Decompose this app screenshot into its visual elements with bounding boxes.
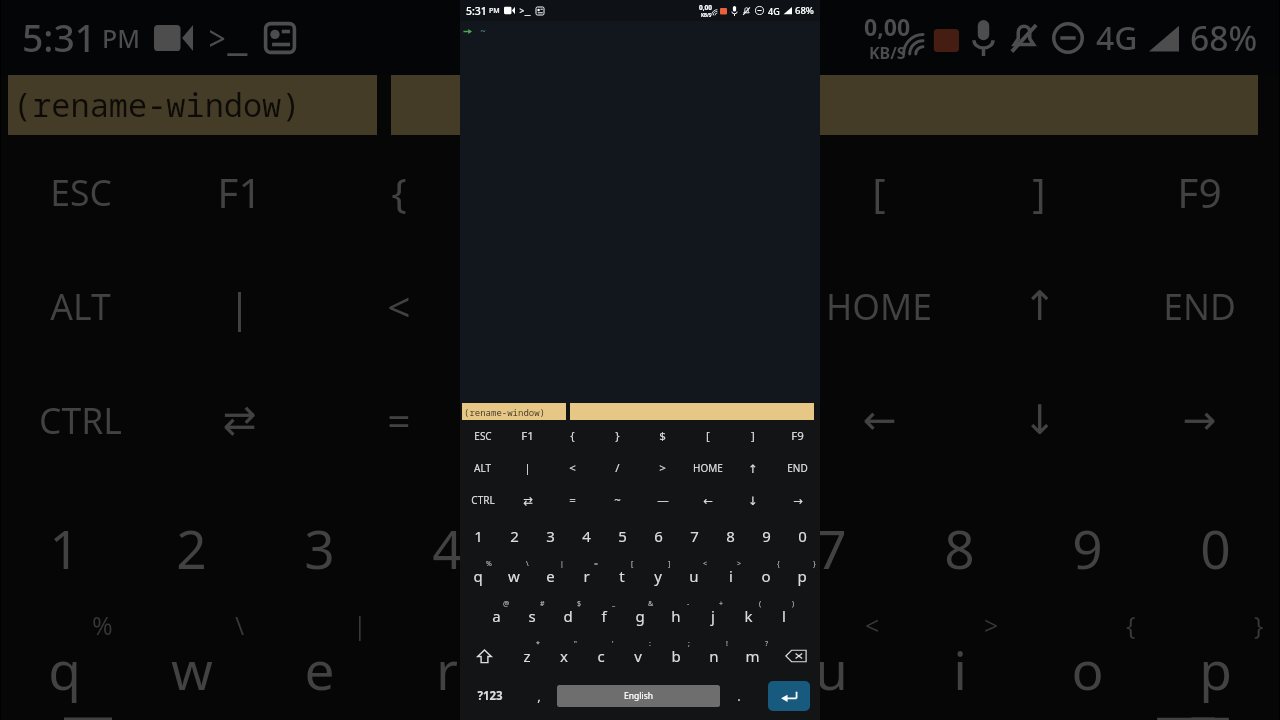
button[interactable]: 3 (255, 477, 383, 619)
button[interactable]: r (383, 619, 511, 720)
button[interactable]: F1 (505, 420, 550, 452)
button[interactable]: 9 (1023, 477, 1151, 619)
button[interactable]: Shift (460, 636, 508, 676)
button[interactable]: ALT (460, 452, 505, 484)
button[interactable]: F1 (160, 135, 319, 249)
button[interactable]: ⇄ (505, 484, 550, 516)
button[interactable]: j (694, 596, 730, 636)
button[interactable]: [ (685, 420, 730, 452)
button[interactable]: a (478, 596, 514, 636)
button[interactable]: 0 (784, 516, 820, 556)
button[interactable]: h (658, 596, 694, 636)
button[interactable]: 4 (383, 477, 511, 619)
button[interactable]: 6 (639, 477, 767, 619)
button[interactable]: ↓ (730, 484, 775, 516)
button[interactable]: q (1, 619, 128, 720)
button[interactable]: ESC (1, 135, 160, 249)
button[interactable]: p (784, 556, 820, 596)
button[interactable]: CTRL (1, 363, 160, 477)
button[interactable]: English (557, 685, 720, 707)
button[interactable]: $ (640, 420, 685, 452)
button[interactable]: | (505, 452, 550, 484)
button[interactable]: { (550, 420, 595, 452)
button[interactable]: x (545, 636, 582, 676)
button[interactable]: END (1119, 249, 1279, 363)
button[interactable]: ALT (1, 249, 160, 363)
button[interactable]: 2 (496, 516, 532, 556)
button[interactable]: | (160, 249, 319, 363)
button[interactable]: 1 (460, 516, 496, 556)
button[interactable]: / (595, 452, 640, 484)
button[interactable]: 8 (712, 516, 748, 556)
button[interactable]: END (775, 452, 820, 484)
button[interactable]: < (319, 249, 479, 363)
button[interactable]: i (895, 619, 1023, 720)
button[interactable]: 7 (767, 477, 895, 619)
button[interactable]: t (604, 556, 640, 596)
button[interactable]: — (639, 363, 799, 477)
button[interactable]: 3 (532, 516, 568, 556)
button[interactable]: q (460, 556, 496, 596)
button[interactable]: ESC (460, 420, 505, 452)
button[interactable]: 2 (128, 477, 255, 619)
button[interactable]: . (720, 676, 757, 716)
button[interactable]: ↑ (730, 452, 775, 484)
button[interactable]: f (586, 596, 622, 636)
button[interactable]: u (767, 619, 895, 720)
button[interactable]: w (128, 619, 255, 720)
button[interactable]: c (582, 636, 619, 676)
button[interactable]: F9 (1119, 135, 1279, 249)
button[interactable]: > (640, 452, 685, 484)
button[interactable]: { (319, 135, 479, 249)
button[interactable]: ↑ (959, 249, 1119, 363)
button[interactable]: = (550, 484, 595, 516)
button[interactable]: HOME (799, 249, 959, 363)
button[interactable]: ⇄ (160, 363, 319, 477)
button[interactable]: < (550, 452, 595, 484)
button[interactable]: } (595, 420, 640, 452)
button[interactable]: s (514, 596, 550, 636)
button[interactable]: l (766, 596, 802, 636)
button[interactable]: n (695, 636, 733, 676)
button[interactable]: t (511, 619, 639, 720)
button[interactable]: , (520, 676, 557, 716)
button[interactable]: 9 (748, 516, 784, 556)
button[interactable]: 1 (1, 477, 128, 619)
button[interactable]: o (1023, 619, 1151, 720)
button[interactable]: ~ (595, 484, 640, 516)
button[interactable]: F9 (775, 420, 820, 452)
button[interactable]: b (657, 636, 695, 676)
button[interactable]: = (319, 363, 479, 477)
button[interactable]: 5 (511, 477, 639, 619)
button[interactable]: — (640, 484, 685, 516)
button[interactable]: 7 (676, 516, 712, 556)
button[interactable]: 6 (640, 516, 676, 556)
button[interactable]: ← (799, 363, 959, 477)
button[interactable]: v (619, 636, 657, 676)
button[interactable]: 8 (895, 477, 1023, 619)
button[interactable]: ~ (479, 363, 639, 477)
button[interactable]: → (775, 484, 820, 516)
button[interactable]: m (733, 636, 771, 676)
button[interactable]: 4 (568, 516, 604, 556)
button[interactable]: Enter (768, 681, 810, 711)
button[interactable]: y (639, 619, 767, 720)
button[interactable]: d (550, 596, 586, 636)
button[interactable]: ← (685, 484, 730, 516)
button[interactable]: w (496, 556, 532, 596)
button[interactable]: p (1151, 619, 1279, 720)
button[interactable]: y (640, 556, 676, 596)
button[interactable]: k (730, 596, 766, 636)
button[interactable]: Backspace (771, 636, 820, 676)
button[interactable]: CTRL (460, 484, 505, 516)
button[interactable]: 5 (604, 516, 640, 556)
button[interactable]: e (255, 619, 383, 720)
button[interactable]: ?123 (460, 676, 520, 716)
button[interactable]: [ (799, 135, 959, 249)
button[interactable]: ] (959, 135, 1119, 249)
button[interactable]: ] (730, 420, 775, 452)
button[interactable]: e (532, 556, 568, 596)
button[interactable]: ↓ (959, 363, 1119, 477)
